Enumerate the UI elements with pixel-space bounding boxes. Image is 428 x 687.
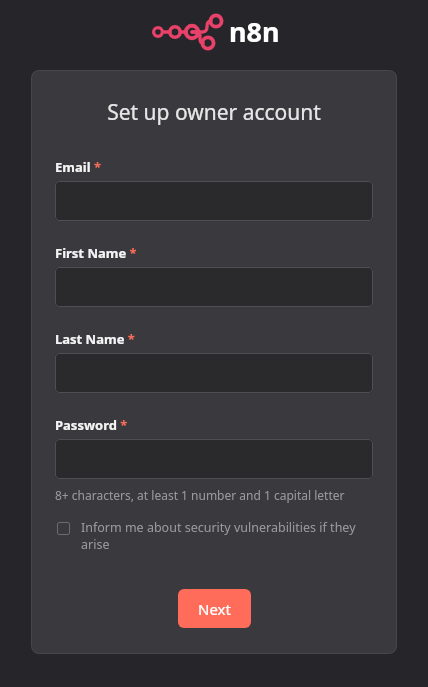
other: n8n logo bbox=[148, 9, 222, 53]
button[interactable]: Password input bbox=[55, 439, 373, 479]
button[interactable]: Last name input bbox=[55, 353, 373, 393]
button[interactable]: Email input bbox=[55, 181, 373, 221]
staticText: Set up owner account bbox=[55, 98, 373, 127]
staticText: Email * bbox=[55, 158, 101, 176]
button[interactable]: First name input bbox=[55, 267, 373, 307]
staticText: Next bbox=[198, 599, 231, 619]
button[interactable]: Next bbox=[178, 589, 251, 628]
staticText: Password * bbox=[55, 416, 128, 434]
staticText: Inform me about security vulnerabilities… bbox=[81, 519, 373, 552]
staticText: First Name * bbox=[55, 244, 137, 262]
staticText: 8+ characters, at least 1 number and 1 c… bbox=[55, 487, 345, 503]
button[interactable]: Inform me about security vulnerabilities… bbox=[55, 519, 373, 552]
staticText: n8n bbox=[229, 13, 280, 50]
staticText: Last Name * bbox=[55, 330, 135, 348]
